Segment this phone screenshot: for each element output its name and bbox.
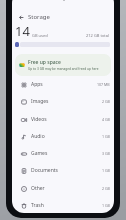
staticText: Free up space bbox=[28, 59, 61, 66]
staticText: 1 GB bbox=[102, 134, 110, 139]
staticText: 2 GB bbox=[102, 99, 110, 104]
staticText: Apps bbox=[31, 81, 43, 88]
staticText: 107 MB bbox=[97, 82, 110, 87]
staticText: 212 GB total bbox=[86, 33, 110, 38]
staticText: 4 GB bbox=[102, 117, 110, 122]
button[interactable]: Images bbox=[12, 93, 114, 110]
staticText: 1 GB bbox=[102, 203, 110, 208]
staticText: Up to 3 GB may be managed and freed up h… bbox=[28, 67, 99, 71]
button[interactable]: Videos bbox=[12, 111, 114, 128]
button[interactable]: Other bbox=[12, 180, 114, 197]
button[interactable]: Games bbox=[12, 145, 114, 162]
staticText: 3 GB bbox=[102, 151, 110, 156]
staticText: Images bbox=[31, 98, 49, 105]
button[interactable]: Free up space bbox=[15, 54, 111, 76]
staticText: Trash bbox=[31, 202, 44, 209]
staticText: Videos bbox=[31, 116, 47, 123]
staticText: 1 GB bbox=[102, 168, 110, 173]
button[interactable]: Audio bbox=[12, 128, 114, 145]
button[interactable]: Apps bbox=[12, 76, 114, 93]
button[interactable]: Back bbox=[16, 12, 27, 23]
staticText: 14 bbox=[15, 22, 30, 40]
staticText: Audio bbox=[31, 133, 45, 140]
staticText: 2 GB bbox=[102, 186, 110, 191]
staticText: Storage bbox=[28, 13, 50, 21]
staticText: Documents bbox=[31, 167, 58, 174]
staticText: Other bbox=[31, 185, 45, 192]
button[interactable]: Trash bbox=[12, 197, 114, 213]
button[interactable]: Documents bbox=[12, 162, 114, 179]
staticText: Games bbox=[31, 150, 48, 157]
staticText: GB used bbox=[32, 33, 48, 38]
